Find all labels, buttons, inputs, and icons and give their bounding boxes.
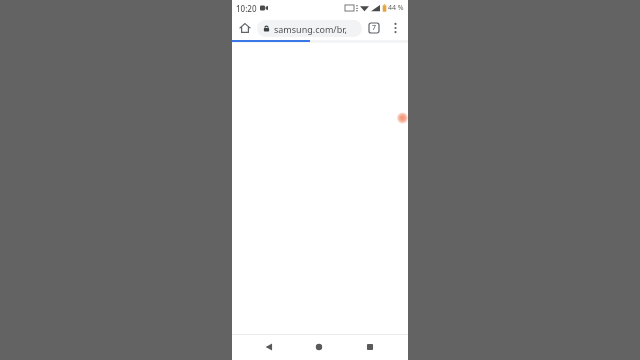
button[interactable]: Home [306, 334, 332, 360]
button[interactable]: Back [256, 334, 282, 360]
button[interactable]: samsung.com/br, [257, 20, 362, 37]
button[interactable]: Home [235, 18, 255, 38]
button[interactable]: More options [385, 18, 405, 38]
staticText: 44 % [388, 3, 404, 13]
button[interactable]: Recent apps [357, 334, 383, 360]
staticText: samsung.com/br, [274, 23, 347, 35]
staticText: 7 [372, 23, 377, 33]
staticText: 10:20 [236, 3, 257, 14]
button[interactable]: Tabs [364, 18, 384, 38]
